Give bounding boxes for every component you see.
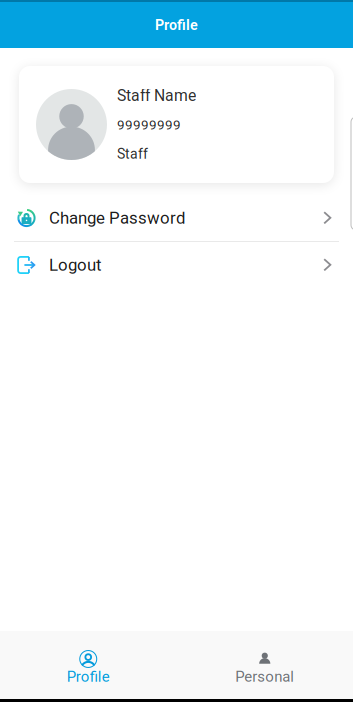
staticText: Staff Name <box>117 86 196 105</box>
staticText: Staff <box>117 146 148 162</box>
staticText: Profile <box>67 668 110 685</box>
button[interactable]: Change Password <box>0 195 353 242</box>
staticText: Personal <box>235 668 294 685</box>
button[interactable]: Logout <box>0 242 353 289</box>
button[interactable]: Personal <box>176 631 353 699</box>
button[interactable]: Profile <box>0 631 176 699</box>
staticText: 99999999 <box>117 117 181 133</box>
staticText: Logout <box>49 255 101 275</box>
staticText: Profile <box>155 17 198 33</box>
staticText: Change Password <box>49 208 185 228</box>
